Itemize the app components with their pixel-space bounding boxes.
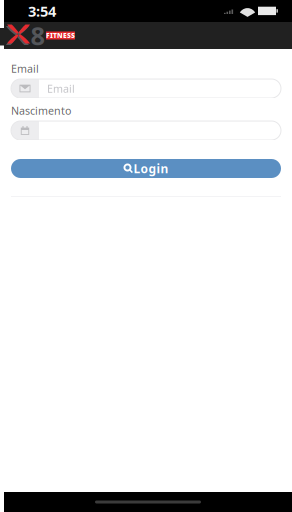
staticText: Nascimento	[11, 103, 71, 118]
staticText: 3:54	[28, 1, 56, 21]
staticText: FITNESS	[46, 31, 75, 40]
staticText: Email	[11, 61, 39, 76]
button[interactable]	[11, 121, 281, 140]
staticText: Login	[133, 160, 168, 176]
button[interactable]: Email	[11, 79, 281, 98]
staticText: 8	[30, 19, 44, 52]
staticText: Email	[47, 81, 75, 96]
button[interactable]: Login	[11, 159, 281, 178]
